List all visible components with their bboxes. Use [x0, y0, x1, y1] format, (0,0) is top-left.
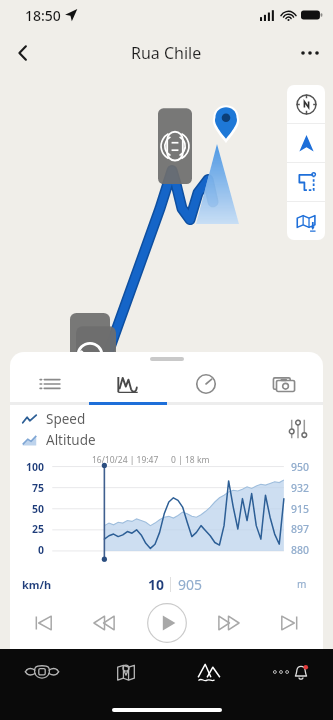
- button[interactable]: Bike: [0, 649, 84, 695]
- button[interactable]: More options: [287, 30, 333, 75]
- button[interactable]: List: [10, 366, 89, 402]
- staticText: 0 | 18 km: [171, 454, 210, 466]
- staticText: 0: [16, 543, 44, 557]
- staticText: m: [297, 577, 307, 591]
- button[interactable]: Skip to start: [24, 603, 64, 643]
- staticText: 75: [16, 481, 44, 495]
- staticText: 905: [178, 575, 203, 594]
- button[interactable]: Skip to end: [269, 603, 309, 643]
- staticText: 25: [16, 522, 44, 536]
- button[interactable]: Notifications: [250, 649, 333, 695]
- button[interactable]: Photos: [245, 366, 323, 402]
- staticText: 932: [291, 481, 319, 495]
- button[interactable]: Download map: [287, 202, 325, 240]
- button[interactable]: Map: [84, 649, 167, 695]
- staticText: 897: [291, 522, 319, 536]
- button[interactable]: Compass: [287, 85, 325, 123]
- button[interactable]: Play: [146, 602, 188, 644]
- button[interactable]: Navigate: [287, 124, 325, 162]
- staticText: 18:50: [25, 6, 61, 25]
- button[interactable]: Select area: [287, 163, 325, 201]
- button[interactable]: Back: [0, 30, 46, 75]
- staticText: Speed: [46, 410, 86, 428]
- staticText: 100: [16, 460, 44, 474]
- staticText: 16/10/24 | 19:47: [92, 454, 159, 466]
- button[interactable]: Gauge: [167, 366, 245, 402]
- staticText: Altitude: [46, 431, 96, 449]
- button[interactable]: Chart: [89, 366, 167, 402]
- button[interactable]: Tracks: [167, 649, 250, 695]
- staticText: 10: [130, 575, 164, 594]
- button[interactable]: Rewind: [85, 603, 125, 643]
- staticText: 950: [291, 460, 319, 474]
- button[interactable]: Chart settings: [283, 414, 313, 444]
- staticText: 915: [291, 502, 319, 516]
- staticText: km/h: [22, 577, 52, 592]
- staticText: 880: [291, 543, 319, 557]
- staticText: 50: [16, 502, 44, 516]
- button[interactable]: Fast forward: [208, 603, 248, 643]
- staticText: Rua Chile: [131, 42, 202, 64]
